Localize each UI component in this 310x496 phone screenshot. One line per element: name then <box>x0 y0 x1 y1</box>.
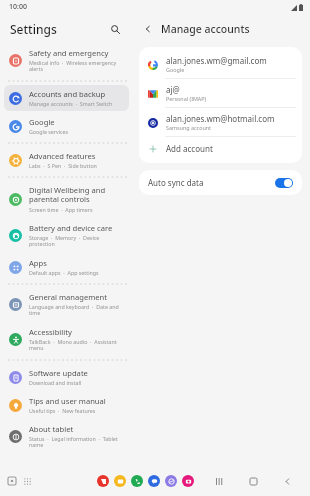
staticText: Digital Wellbeing and parental controls <box>29 185 125 205</box>
staticText: Accounts and backup <box>29 89 106 99</box>
staticText: Auto sync data <box>148 177 275 188</box>
button[interactable]: Digital Wellbeing and parental controls <box>4 181 129 217</box>
button[interactable]: Recents <box>212 474 226 488</box>
staticText: Labs · S Pen · Side button <box>29 162 97 169</box>
button[interactable]: Search <box>105 19 125 39</box>
button[interactable]: Safety and emergency <box>4 44 129 77</box>
button[interactable]: alan.jones.wm@hotmail.com <box>139 108 302 136</box>
staticText: Settings <box>10 21 57 37</box>
button[interactable]: Software update <box>4 364 129 390</box>
staticText: Personal (IMAP) <box>166 95 207 102</box>
staticText: Language and keyboard · Date and time <box>29 303 125 317</box>
button[interactable]: INTERNET <box>165 475 177 487</box>
button[interactable]: Home <box>246 474 260 488</box>
staticText: Download and install <box>29 379 82 386</box>
button[interactable]: alan.jones.wm@gmail.com <box>139 50 302 78</box>
staticText: Battery and device care <box>29 223 113 233</box>
button[interactable]: FLIP <box>97 475 109 487</box>
staticText: Google services <box>29 128 69 135</box>
button[interactable]: PHONE <box>131 475 143 487</box>
staticText: Storage · Memory · Device protection <box>29 234 125 248</box>
button[interactable]: Battery and device care <box>4 219 129 252</box>
button[interactable]: CAMERA <box>182 475 194 487</box>
staticText: Advanced features <box>29 151 96 161</box>
button[interactable]: Recent apps <box>7 476 17 486</box>
staticText: aj@ <box>166 84 180 95</box>
staticText: Medical info · Wireless emergency alerts <box>29 59 125 73</box>
staticText: Manage accounts · Smart Switch <box>29 100 113 107</box>
staticText: Useful tips · New features <box>29 407 96 414</box>
button[interactable]: Google <box>4 113 129 139</box>
button[interactable]: All apps <box>22 476 32 486</box>
button[interactable]: Apps <box>4 254 129 280</box>
staticText: Google <box>166 66 185 73</box>
staticText: Add account <box>166 143 213 154</box>
staticText: 10:00 <box>9 2 27 12</box>
button[interactable]: General management <box>4 288 129 321</box>
staticText: Safety and emergency <box>29 48 109 58</box>
staticText: Tips and user manual <box>29 396 106 406</box>
button[interactable]: Back <box>280 474 294 488</box>
button[interactable]: Add account <box>139 137 302 160</box>
button[interactable]: Auto sync data <box>139 170 302 195</box>
button[interactable]: MSG <box>148 475 160 487</box>
staticText: Manage accounts <box>161 22 250 36</box>
staticText: Apps <box>29 258 47 268</box>
staticText: TalkBack · Mono audio · Assistant menu <box>29 338 125 352</box>
button[interactable]: Back <box>139 20 157 38</box>
staticText: General management <box>29 292 108 302</box>
staticText: Screen time · App timers <box>29 206 93 213</box>
staticText: alan.jones.wm@gmail.com <box>166 55 267 66</box>
staticText: Software update <box>29 368 88 378</box>
staticText: About tablet <box>29 424 74 434</box>
button[interactable]: FOLDER <box>114 475 126 487</box>
staticText: Google <box>29 117 55 127</box>
button[interactable]: Tips and user manual <box>4 392 129 418</box>
staticText: Status · Legal information · Tablet name <box>29 435 125 449</box>
button[interactable]: Accounts and backup <box>4 85 129 111</box>
button[interactable]: About tablet <box>4 420 129 453</box>
staticText: Accessibility <box>29 327 72 337</box>
staticText: alan.jones.wm@hotmail.com <box>166 113 275 124</box>
button[interactable]: aj@ <box>139 79 302 107</box>
button[interactable]: Advanced features <box>4 147 129 173</box>
button[interactable]: Accessibility <box>4 323 129 356</box>
staticText: Default apps · App settings <box>29 269 99 276</box>
staticText: Samsung account <box>166 124 212 131</box>
